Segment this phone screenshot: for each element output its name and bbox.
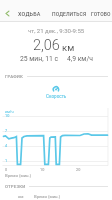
staticText: ПОДЕЛИТЬСЯ xyxy=(52,11,87,17)
staticText: 0 xyxy=(5,167,8,171)
staticText: ОТРЕЗКИ xyxy=(5,184,26,189)
staticText: км/ч xyxy=(5,109,14,113)
staticText: км xyxy=(18,194,24,199)
staticText: чт, 21 дек., 9:30-9:55 xyxy=(28,27,85,34)
staticText: Скорость xyxy=(46,94,67,99)
staticText: ХОДЬБА xyxy=(18,11,41,17)
staticText: 7 xyxy=(5,128,8,132)
staticText: 20 xyxy=(76,167,81,171)
staticText: Время (мин.) xyxy=(34,194,61,199)
staticText: 4 xyxy=(5,143,8,147)
staticText: км xyxy=(62,42,75,53)
staticText: 4,9 км/ч xyxy=(67,55,93,63)
staticText: ГОТОВО xyxy=(91,11,111,17)
staticText: Время (мин.) xyxy=(5,173,32,178)
button[interactable]: Back xyxy=(0,6,14,20)
staticText: 1 xyxy=(5,158,8,162)
staticText: 2,06 xyxy=(33,37,60,54)
button[interactable]: ГОТОВО xyxy=(88,8,112,20)
button[interactable]: ПОДЕЛИТЬСЯ xyxy=(49,8,90,20)
button[interactable]: Скорость xyxy=(0,85,112,99)
staticText: 10 xyxy=(5,113,10,117)
staticText: ГРАФИК xyxy=(5,74,24,79)
staticText: 10 xyxy=(40,167,45,171)
staticText: 25 мин, 11 с xyxy=(20,55,59,63)
